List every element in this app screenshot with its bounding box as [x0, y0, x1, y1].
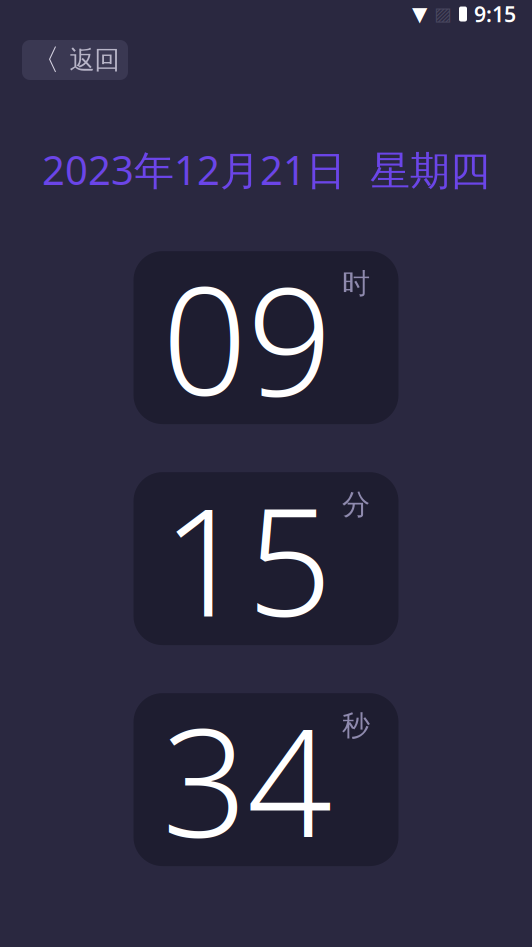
staticText: 09 — [162, 238, 332, 437]
staticText: ▨ — [434, 3, 452, 25]
staticText: 返回 — [69, 44, 119, 75]
staticText: 秒 — [342, 708, 370, 743]
staticText: 时 — [342, 266, 370, 301]
staticText: 34 — [162, 680, 332, 879]
staticText: 15 — [162, 459, 332, 658]
staticText: 9:15 — [474, 0, 516, 28]
staticText: 分 — [342, 487, 370, 522]
button[interactable]: 〈 — [22, 40, 128, 80]
staticText: 〈 — [30, 42, 59, 78]
staticText: 2023年12月21日 星期四 — [42, 143, 490, 196]
staticText: ▼ — [412, 3, 427, 25]
